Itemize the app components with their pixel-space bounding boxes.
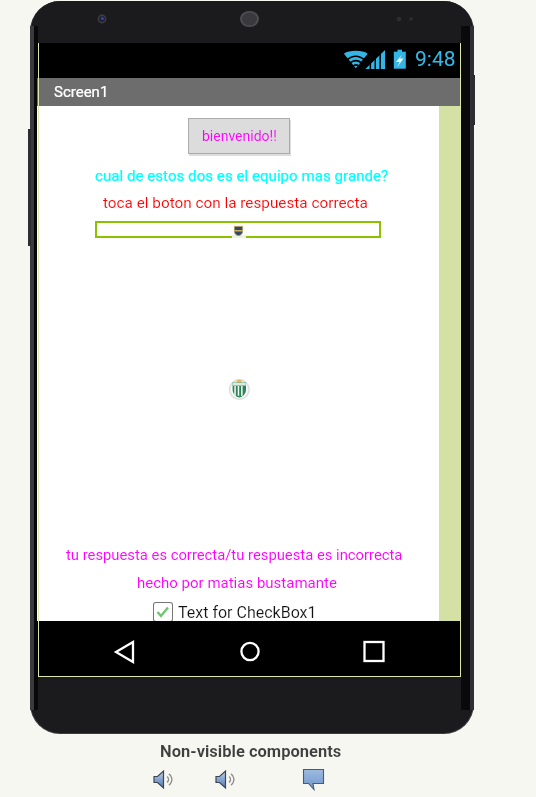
button[interactable]: Text for CheckBox1 xyxy=(153,602,317,622)
staticText: Non-visible components xyxy=(160,742,342,761)
button[interactable]: Recents xyxy=(355,632,393,670)
staticText: bienvenido!! xyxy=(202,128,277,144)
button[interactable]: Notifier xyxy=(303,769,325,790)
button[interactable]: Home xyxy=(231,632,269,670)
button[interactable]: Sound component xyxy=(215,770,236,789)
staticText: tu respuesta es correcta/tu respuesta es… xyxy=(66,546,403,563)
button[interactable]: Back xyxy=(106,629,144,667)
staticText: cual de estos dos es el equipo mas grand… xyxy=(95,167,389,185)
button[interactable]: Sound component xyxy=(153,770,174,789)
staticText: toca el boton con la respuesta correcta xyxy=(103,194,368,212)
staticText: 9:48 xyxy=(415,47,456,72)
staticText: Screen1 xyxy=(54,83,109,101)
button[interactable]: Screen1 xyxy=(37,78,461,106)
button[interactable]: bienvenido!! xyxy=(189,119,289,153)
staticText: Text for CheckBox1 xyxy=(178,603,317,622)
staticText: hecho por matias bustamante xyxy=(137,574,337,592)
